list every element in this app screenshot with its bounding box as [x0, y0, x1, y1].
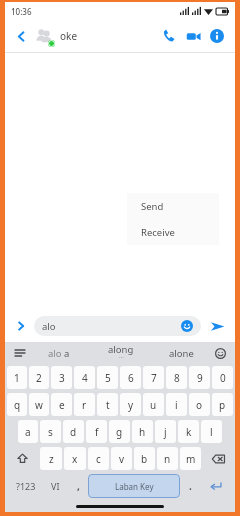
button[interactable]: 6	[120, 366, 141, 389]
staticText: 4	[82, 371, 88, 385]
staticText: s	[48, 425, 53, 439]
button[interactable]: t	[97, 393, 118, 416]
button[interactable]: Call	[157, 24, 181, 48]
button[interactable]: x	[64, 447, 86, 470]
staticText: 2	[36, 371, 42, 385]
staticText: r	[82, 398, 87, 412]
staticText: w	[35, 398, 43, 412]
staticText: .	[189, 479, 192, 493]
staticText: v	[119, 452, 125, 466]
button[interactable]: u	[143, 393, 164, 416]
staticText: k	[186, 425, 192, 439]
button[interactable]: 3	[51, 366, 72, 389]
staticText: 3	[59, 371, 65, 385]
button[interactable]: Video call	[181, 24, 205, 48]
button[interactable]: p	[212, 393, 233, 416]
button[interactable]: c	[88, 447, 109, 470]
button[interactable]: e	[51, 393, 72, 416]
button[interactable]: z	[40, 447, 62, 470]
button[interactable]: 0	[212, 366, 233, 389]
staticText: Laban Key	[115, 481, 154, 492]
button[interactable]: 4	[74, 366, 95, 389]
button[interactable]: More options	[12, 317, 30, 335]
staticText: g	[116, 425, 123, 439]
button[interactable]: 7	[143, 366, 164, 389]
button[interactable]: Enter	[200, 474, 231, 498]
staticText: p	[219, 398, 226, 412]
staticText: oke	[60, 29, 78, 43]
staticText: b	[141, 452, 148, 466]
button[interactable]: Info	[205, 24, 229, 48]
staticText: 1	[14, 371, 20, 385]
staticText: c	[96, 452, 101, 466]
button[interactable]: along	[90, 342, 151, 364]
staticText: VI	[51, 480, 60, 492]
button[interactable]: m	[180, 447, 201, 470]
staticText: h	[139, 425, 146, 439]
staticText: a	[64, 347, 70, 360]
button[interactable]: i	[166, 393, 187, 416]
button[interactable]: l	[201, 420, 222, 443]
staticText: 9	[197, 371, 203, 385]
button[interactable]: Send	[127, 193, 219, 219]
button[interactable]: Laban Key	[88, 474, 180, 498]
button[interactable]: o	[189, 393, 210, 416]
button[interactable]: k	[178, 420, 199, 443]
button[interactable]: VI	[42, 474, 68, 498]
button[interactable]: b	[134, 447, 155, 470]
button[interactable]: Send	[206, 315, 228, 337]
button[interactable]: 8	[166, 366, 187, 389]
staticText: ,	[77, 479, 80, 493]
staticText: alone	[169, 347, 194, 360]
button[interactable]: alo	[28, 342, 90, 364]
button[interactable]: n	[157, 447, 178, 470]
button[interactable]: 9	[189, 366, 210, 389]
button[interactable]: .	[180, 474, 200, 498]
button[interactable]: v	[111, 447, 132, 470]
button[interactable]: Backspace	[203, 447, 233, 470]
button[interactable]: r	[74, 393, 95, 416]
staticText: t	[106, 398, 110, 412]
staticText: m	[186, 452, 196, 466]
button[interactable]: ?123	[9, 474, 42, 498]
staticText: o	[196, 398, 203, 412]
button[interactable]: Back	[11, 26, 31, 46]
staticText: 0	[220, 371, 226, 385]
staticText: f	[95, 425, 99, 439]
staticText: ···	[119, 353, 124, 361]
button[interactable]: 2	[29, 366, 49, 389]
staticText: Send	[141, 200, 164, 213]
button[interactable]: Receive	[127, 219, 219, 245]
staticText: y	[128, 398, 134, 412]
button[interactable]: a	[18, 420, 38, 443]
button[interactable]: q	[7, 393, 27, 416]
button[interactable]: f	[86, 420, 107, 443]
button[interactable]: Keyboard menu	[12, 345, 28, 361]
button[interactable]: Shift	[7, 447, 38, 470]
staticText: z	[49, 452, 54, 466]
staticText: along	[108, 343, 134, 356]
button[interactable]: d	[63, 420, 84, 443]
button[interactable]: w	[29, 393, 49, 416]
button[interactable]: 5	[97, 366, 118, 389]
staticText: d	[70, 425, 77, 439]
button[interactable]: Emoji	[212, 345, 228, 361]
button[interactable]: alo	[34, 316, 201, 336]
staticText: q	[14, 398, 21, 412]
button[interactable]: s	[40, 420, 61, 443]
button[interactable]: h	[132, 420, 153, 443]
staticText: ?123	[16, 480, 36, 492]
button[interactable]: j	[155, 420, 176, 443]
button[interactable]: ,	[68, 474, 88, 498]
button[interactable]: oke	[33, 20, 157, 52]
button[interactable]: 1	[7, 366, 27, 389]
staticText: x	[72, 452, 78, 466]
button[interactable]: y	[120, 393, 141, 416]
staticText: i	[175, 398, 178, 412]
staticText: 8	[174, 371, 180, 385]
button[interactable]: g	[109, 420, 130, 443]
staticText: a	[25, 425, 31, 439]
staticText: e	[59, 398, 65, 412]
button[interactable]: alone	[151, 342, 212, 364]
staticText: l	[210, 425, 213, 439]
